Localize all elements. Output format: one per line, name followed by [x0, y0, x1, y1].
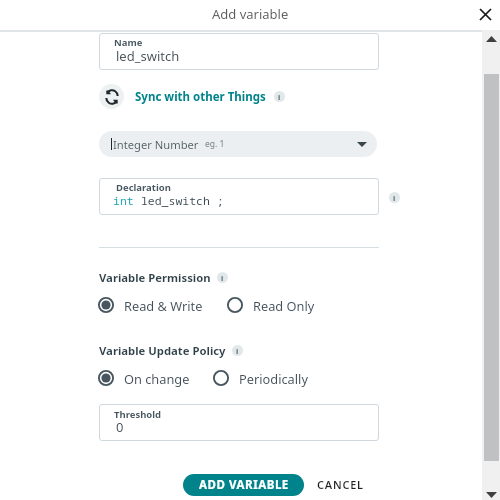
button[interactable]: On change	[97, 369, 190, 387]
button[interactable]: Integer Number	[99, 131, 377, 157]
staticText: Add variable	[212, 5, 289, 23]
staticText: On change	[124, 370, 190, 387]
staticText: CANCEL	[317, 477, 364, 492]
staticText: Integer Number	[113, 137, 199, 152]
staticText: Declaration	[116, 181, 171, 194]
staticText: i	[221, 273, 224, 283]
staticText: ADD VARIABLE	[199, 477, 289, 493]
button[interactable]: Scroll up	[482, 30, 500, 48]
button[interactable]: ADD VARIABLE	[183, 474, 304, 496]
button[interactable]: CANCEL	[313, 474, 368, 495]
button[interactable]: Close	[475, 4, 496, 25]
staticText: Read & Write	[124, 297, 203, 314]
button[interactable]: Threshold	[99, 404, 379, 441]
staticText: Name	[114, 36, 143, 49]
staticText: Variable Permission	[99, 270, 211, 285]
staticText: i	[236, 346, 239, 356]
staticText: Threshold	[114, 408, 162, 421]
button[interactable]: Name	[99, 33, 379, 70]
button[interactable]: Scroll down	[482, 482, 500, 500]
staticText: led_switch ;	[134, 193, 224, 209]
button[interactable]: Periodically	[212, 369, 308, 387]
staticText: 0	[116, 418, 124, 436]
staticText: i	[278, 92, 281, 102]
staticText: i	[393, 193, 396, 203]
staticText: eg. 1	[205, 138, 225, 150]
staticText: Read Only	[253, 297, 315, 314]
button[interactable]: Read Only	[226, 296, 315, 314]
button[interactable]: Read & Write	[97, 296, 203, 314]
staticText: led_switch	[116, 47, 180, 65]
staticText: Variable Update Policy	[99, 343, 226, 358]
staticText: Periodically	[239, 370, 308, 387]
staticText: Sync with other Things	[135, 89, 266, 105]
staticText: int	[113, 193, 134, 209]
button[interactable]: Declaration	[99, 178, 379, 215]
button[interactable]: Sync with other Things	[99, 84, 285, 109]
